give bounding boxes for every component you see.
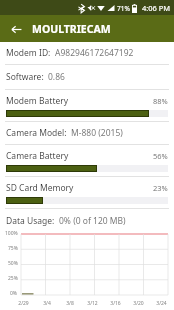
staticText: 3/20 [133,300,144,307]
staticText: Modem Battery [6,95,69,107]
staticText: Camera Battery [6,150,69,162]
staticText: 50% [8,260,18,267]
staticText: 23% [153,183,168,193]
staticText: A982946172647192 [55,47,134,59]
button[interactable]: Modem ID: [0,47,174,59]
button[interactable]: Software: [0,71,174,83]
staticText: 88% [153,96,168,106]
button[interactable]: SD Card Memory [0,182,174,204]
staticText: 25% [8,275,18,282]
button[interactable]: Modem Battery [0,95,174,117]
staticText: 3/8 [66,300,74,307]
staticText: 100% [5,230,18,237]
staticText: Software: [6,71,44,83]
staticText: Data Usage: [6,215,55,227]
staticText: 2/29 [18,300,29,307]
staticText: 3/4 [43,300,51,307]
staticText: 0.86 [48,71,65,83]
button[interactable]: Back [6,19,26,39]
staticText: Camera Model: [6,127,67,139]
staticText: 75% [8,245,18,252]
staticText: M-880 (2015) [71,127,123,139]
staticText: 3/12 [87,300,98,307]
staticText: SD Card Memory [6,182,74,194]
button[interactable]: Camera Battery [0,150,174,172]
staticText: Modem ID: [6,47,51,59]
staticText: 56% [153,151,168,161]
staticText: 4:06 PM [142,3,171,13]
staticText: 0% (0 of 120 MB) [59,215,126,227]
button[interactable]: Data Usage: [0,215,174,227]
staticText: 71% [117,4,130,13]
staticText: 0% [10,290,18,297]
button[interactable]: Camera Model: [0,127,174,139]
staticText: 3/16 [110,300,121,307]
staticText: 3/24 [156,300,167,307]
staticText: MOULTRIECAM [32,22,111,36]
